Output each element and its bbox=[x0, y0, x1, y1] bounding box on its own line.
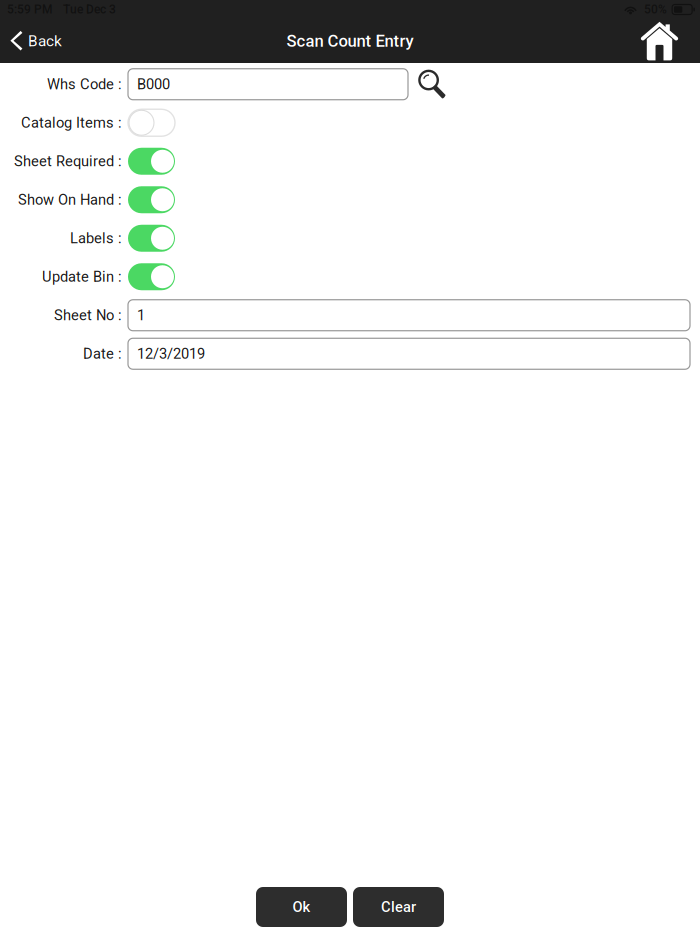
staticText: Labels : bbox=[70, 230, 122, 247]
button[interactable]: Show On Hand bbox=[128, 186, 175, 213]
staticText: Scan Count Entry bbox=[286, 31, 413, 51]
button[interactable]: Labels bbox=[128, 225, 175, 252]
button[interactable]: Back bbox=[0, 19, 74, 63]
button[interactable]: Search bbox=[417, 68, 447, 100]
staticText: Whs Code : bbox=[47, 76, 122, 93]
staticText: 1 bbox=[137, 307, 145, 324]
button[interactable]: Whs Code bbox=[128, 69, 408, 100]
staticText: Catalog Items : bbox=[21, 114, 122, 131]
button[interactable]: Home bbox=[640, 19, 700, 63]
button[interactable]: Date bbox=[128, 338, 690, 369]
staticText: Ok bbox=[292, 898, 310, 916]
staticText: Back bbox=[28, 32, 62, 50]
button[interactable]: Sheet No bbox=[128, 300, 690, 331]
staticText: Tue Dec 3 bbox=[63, 2, 116, 17]
staticText: Show On Hand : bbox=[18, 191, 122, 208]
button[interactable]: Sheet Required bbox=[128, 148, 175, 175]
button[interactable]: Ok bbox=[256, 887, 347, 927]
staticText: Sheet Required : bbox=[14, 153, 122, 170]
staticText: B000 bbox=[137, 76, 170, 93]
button[interactable]: Catalog Items bbox=[128, 109, 175, 136]
staticText: Sheet No : bbox=[54, 307, 122, 324]
staticText: Date : bbox=[83, 345, 122, 362]
staticText: 50% bbox=[644, 2, 667, 17]
staticText: Clear bbox=[381, 898, 416, 916]
staticText: Update Bin : bbox=[42, 268, 122, 285]
button[interactable]: Update Bin bbox=[128, 263, 175, 290]
staticText: 5:59 PM bbox=[7, 2, 52, 17]
staticText: 12/3/2019 bbox=[137, 345, 205, 362]
button[interactable]: Clear bbox=[353, 887, 444, 927]
